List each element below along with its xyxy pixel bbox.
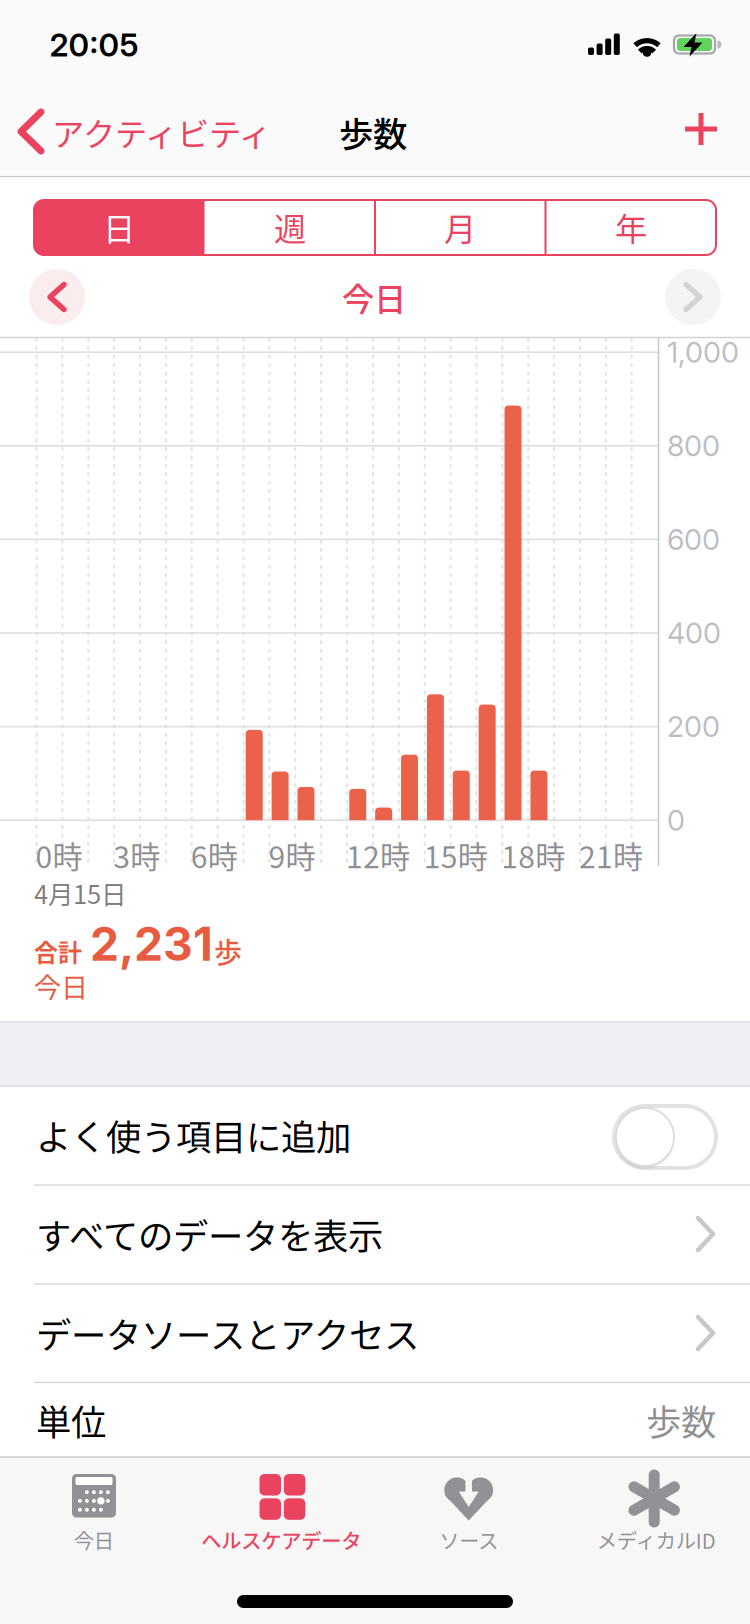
staticText: 600: [667, 522, 720, 557]
staticText: 歩: [214, 931, 242, 971]
staticText: アクティビティ: [52, 109, 271, 155]
staticText: 今日: [342, 274, 406, 320]
staticText: 9時: [268, 833, 315, 877]
staticText: 月: [444, 204, 476, 250]
staticText: 歩数: [646, 1394, 716, 1446]
staticText: ヘルスケアデータ: [201, 1525, 361, 1555]
staticText: 400: [667, 616, 721, 650]
staticText: 週: [274, 204, 306, 250]
staticText: 2,231: [90, 916, 213, 972]
staticText: 12時: [346, 833, 410, 877]
staticText: メディカルID: [597, 1525, 716, 1555]
staticText: 今日: [34, 966, 88, 1006]
staticText: 歩数: [339, 107, 407, 157]
staticText: 1,000: [667, 335, 739, 370]
staticText: 800: [667, 428, 720, 463]
staticText: 3時: [113, 833, 160, 877]
staticText: 0時: [35, 833, 82, 877]
staticText: 0: [667, 803, 685, 838]
staticText: 6時: [191, 833, 238, 877]
staticText: 4月15日: [34, 875, 126, 911]
staticText: すべてのデータを表示: [36, 1208, 383, 1260]
staticText: 200: [667, 709, 720, 744]
staticText: 日: [103, 204, 135, 250]
staticText: 20:05: [49, 26, 138, 64]
staticText: よく使う項目に追加: [36, 1109, 351, 1161]
staticText: データソースとアクセス: [36, 1307, 419, 1359]
staticText: 単位: [36, 1394, 106, 1446]
staticText: 15時: [424, 833, 488, 877]
staticText: 年: [615, 204, 647, 250]
staticText: 合計: [34, 934, 82, 968]
staticText: 今日: [74, 1525, 114, 1555]
staticText: ソース: [439, 1525, 498, 1555]
staticText: 18時: [501, 833, 565, 877]
staticText: 21時: [579, 833, 643, 877]
